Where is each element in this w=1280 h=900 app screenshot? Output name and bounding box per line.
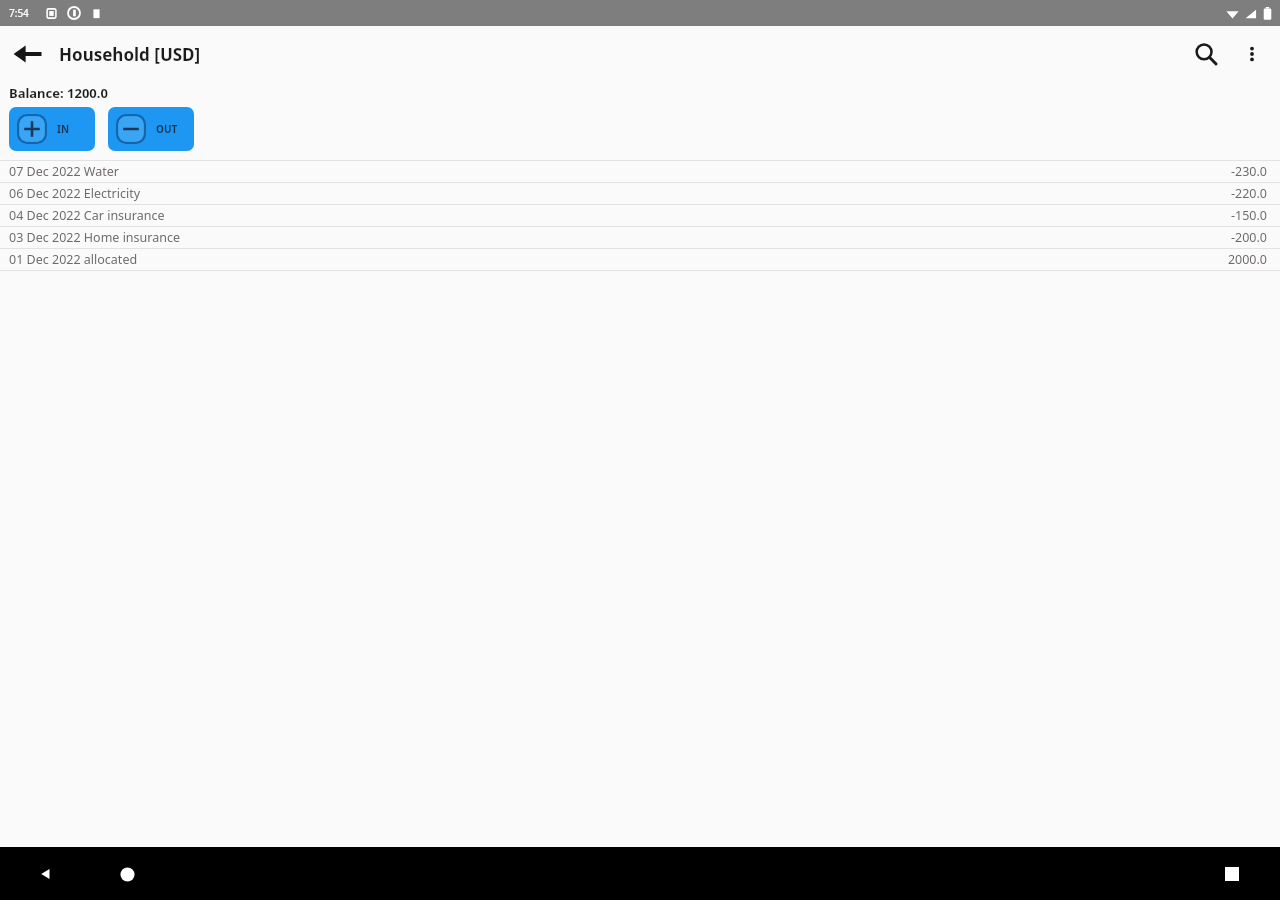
button[interactable]: Search — [1182, 30, 1230, 78]
staticText: -150.0 — [1231, 207, 1267, 224]
button[interactable]: Recent apps — [1208, 850, 1256, 898]
button[interactable]: 01 Dec 2022 allocated — [0, 249, 1280, 271]
staticText: 04 Dec 2022 Car insurance — [9, 207, 165, 224]
button[interactable]: IN — [9, 107, 95, 151]
staticText: 03 Dec 2022 Home insurance — [9, 229, 181, 246]
staticText: 7:54 — [9, 6, 29, 20]
staticText: 2000.0 — [1227, 251, 1267, 268]
button[interactable]: 04 Dec 2022 Car insurance — [0, 205, 1280, 227]
staticText: Household [USD] — [59, 43, 201, 66]
staticText: -230.0 — [1231, 163, 1267, 180]
button[interactable]: Back — [22, 850, 70, 898]
staticText: Balance: 1200.0 — [9, 84, 108, 102]
button[interactable]: 06 Dec 2022 Electricity — [0, 183, 1280, 205]
staticText: 01 Dec 2022 allocated — [9, 251, 138, 268]
button[interactable]: OUT — [108, 107, 194, 151]
button[interactable]: More options — [1230, 32, 1274, 76]
staticText: IN — [57, 122, 70, 136]
button[interactable]: Back — [2, 28, 54, 80]
staticText: -220.0 — [1231, 185, 1267, 202]
staticText: 06 Dec 2022 Electricity — [9, 185, 141, 202]
button[interactable]: 07 Dec 2022 Water — [0, 161, 1280, 183]
staticText: -200.0 — [1231, 229, 1267, 246]
staticText: 07 Dec 2022 Water — [9, 163, 119, 180]
button[interactable]: Home — [103, 850, 151, 898]
button[interactable]: 03 Dec 2022 Home insurance — [0, 227, 1280, 249]
staticText: OUT — [156, 122, 178, 136]
